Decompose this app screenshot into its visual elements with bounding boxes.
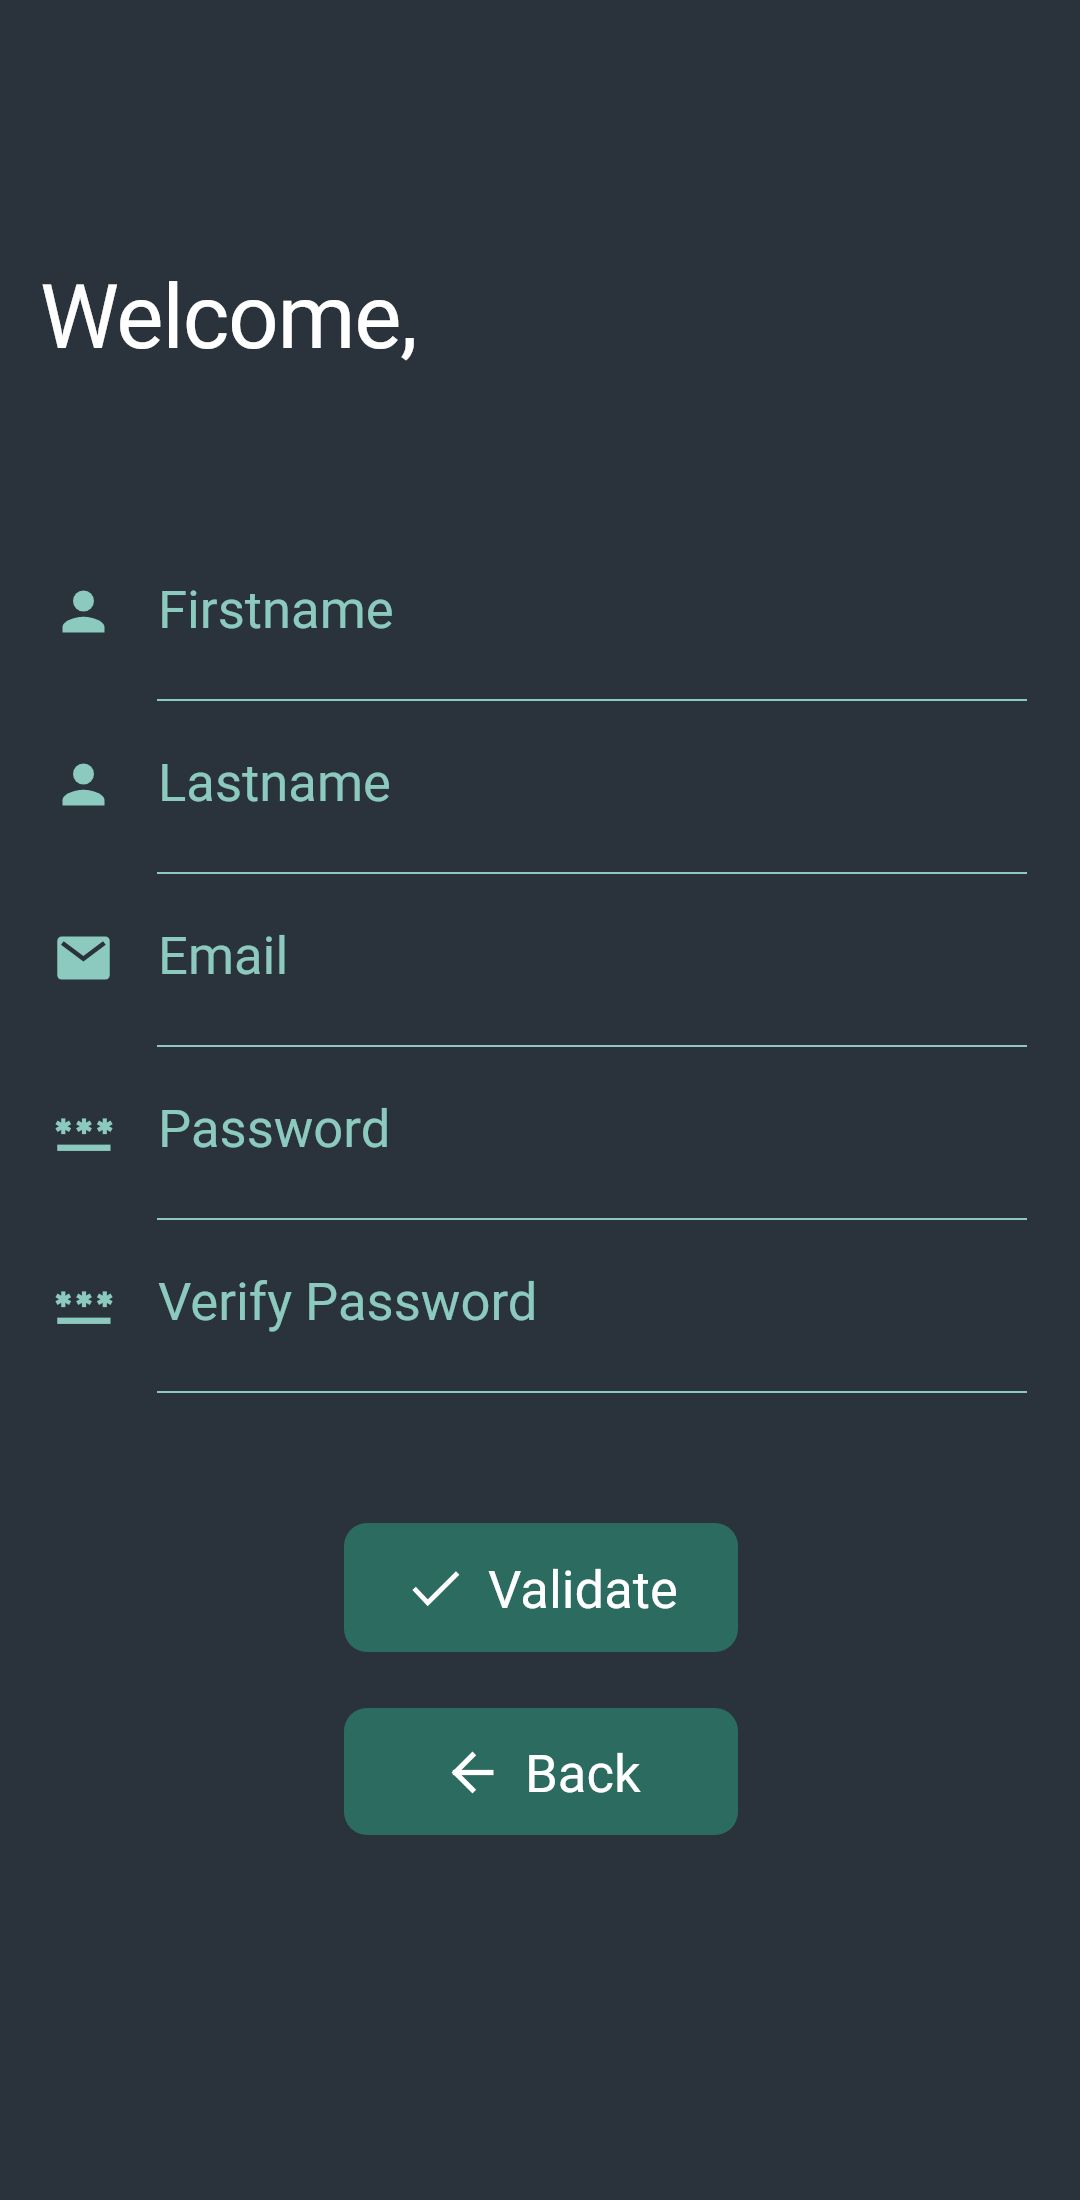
staticText: Lastname: [158, 752, 391, 814]
staticText: Verify Password: [158, 1271, 538, 1333]
button[interactable]: Firstname: [0, 541, 1080, 714]
button[interactable]: Password: [0, 1061, 1080, 1234]
other: Validate: [404, 1557, 467, 1620]
other: Back: [441, 1741, 504, 1804]
button[interactable]: Lastname: [0, 714, 1080, 887]
staticText: Firstname: [158, 579, 394, 641]
staticText: Welcome,: [40, 265, 417, 369]
staticText: Validate: [488, 1559, 678, 1621]
staticText: Back: [525, 1743, 641, 1805]
button[interactable]: Back: [344, 1708, 738, 1835]
button[interactable]: Verify Password: [0, 1234, 1080, 1407]
button[interactable]: Email: [0, 887, 1080, 1060]
staticText: Email: [158, 925, 289, 987]
staticText: Password: [158, 1098, 391, 1160]
button[interactable]: Validate: [344, 1523, 738, 1652]
